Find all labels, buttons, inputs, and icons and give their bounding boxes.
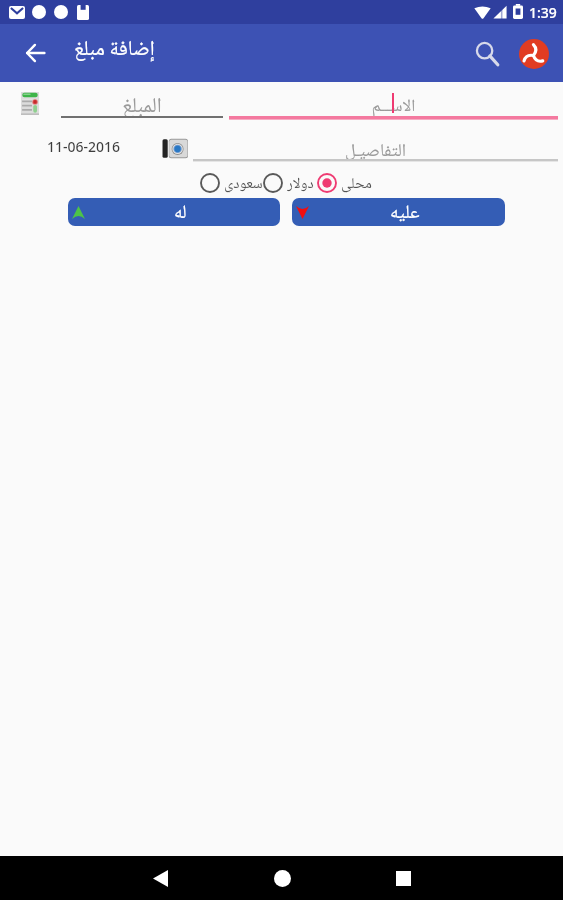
button[interactable]: Export to PDF <box>511 31 557 77</box>
button[interactable]: التفاصيـل <box>193 136 558 163</box>
button[interactable]: المبلغ <box>61 92 223 118</box>
staticText: المبلغ <box>61 90 223 116</box>
button[interactable]: 11-06-2016 <box>47 137 121 156</box>
staticText: الاســـم <box>229 93 558 121</box>
button[interactable]: Home <box>257 856 307 900</box>
button[interactable]: Recent apps <box>378 856 428 900</box>
button[interactable]: إضافة مبلغ <box>74 29 155 73</box>
staticText: له <box>174 198 187 226</box>
staticText: عليه <box>390 198 420 226</box>
button[interactable]: له <box>68 198 280 226</box>
staticText: دولار <box>287 172 314 193</box>
button[interactable]: Search <box>464 31 510 77</box>
staticText: إضافة مبلغ <box>74 33 155 69</box>
button[interactable]: دولار <box>263 172 314 193</box>
button[interactable]: محلي <box>317 172 372 193</box>
button[interactable]: Back <box>135 856 185 900</box>
staticText: سعودي <box>224 172 263 193</box>
button[interactable]: الاســـم <box>229 92 558 120</box>
button[interactable]: Back <box>15 33 55 73</box>
staticText: 1:39 <box>529 3 557 22</box>
button[interactable]: سعودي <box>200 172 263 193</box>
button[interactable]: عليه <box>292 198 505 226</box>
staticText: محلي <box>341 172 372 193</box>
button[interactable]: Take photo <box>162 138 188 159</box>
staticText: التفاصيـل <box>193 137 558 164</box>
